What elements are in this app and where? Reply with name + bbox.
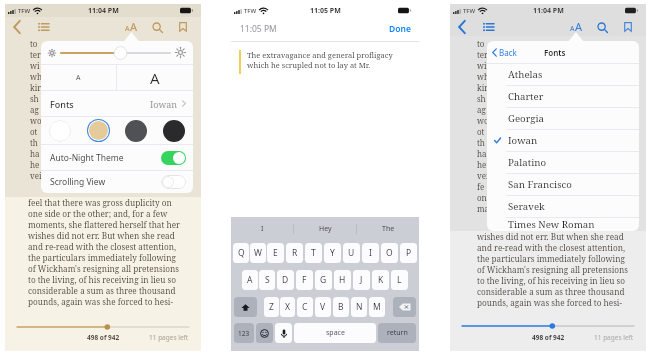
button[interactable]: R: [286, 243, 303, 263]
button[interactable]: L: [391, 270, 408, 290]
button[interactable]: Georgia: [487, 108, 639, 129]
staticText: Fonts: [50, 98, 74, 110]
button[interactable]: E: [267, 243, 284, 263]
button[interactable]: Palatino: [487, 152, 639, 173]
button[interactable]: Done: [387, 21, 413, 37]
button[interactable]: K: [372, 270, 389, 290]
button[interactable]: S: [259, 270, 275, 290]
staticText: U: [348, 247, 355, 259]
button[interactable]: N: [351, 297, 367, 317]
button[interactable]: [161, 175, 186, 189]
staticText: Times New Roman: [508, 218, 595, 231]
button[interactable]: X: [280, 297, 295, 317]
staticText: 11 pages left: [594, 333, 634, 342]
button[interactable]: Times New Roman: [487, 218, 639, 231]
button[interactable]: G: [315, 270, 332, 290]
button[interactable]: Seravek: [487, 196, 639, 217]
staticText: Y: [330, 247, 335, 259]
button[interactable]: Bookmark: [175, 19, 191, 35]
button[interactable]: space: [294, 323, 376, 343]
button[interactable]: Y: [324, 243, 341, 263]
button[interactable]: [155, 117, 193, 144]
staticText: he: [30, 159, 40, 170]
button[interactable]: I: [362, 243, 379, 263]
button[interactable]: Back: [487, 47, 522, 58]
button[interactable]: Athelas: [487, 64, 639, 85]
button[interactable]: Scrolling View: [41, 171, 193, 193]
button[interactable]: B: [333, 297, 349, 317]
button[interactable]: I: [231, 217, 293, 241]
staticText: sh: [477, 93, 486, 104]
button[interactable]: H: [334, 270, 351, 290]
staticText: ag: [477, 104, 486, 115]
button[interactable]: Text options: [122, 17, 141, 36]
button[interactable]: Fonts: [41, 91, 193, 116]
staticText: on: [477, 192, 487, 203]
button[interactable]: Hey: [294, 217, 356, 241]
button[interactable]: F: [296, 270, 313, 290]
button[interactable]: J: [353, 270, 370, 290]
button[interactable]: A: [242, 270, 258, 290]
staticText: A: [76, 73, 81, 83]
staticText: Done: [389, 23, 411, 35]
staticText: C: [302, 301, 308, 313]
staticText: of Wickham's resigning all pretensions: [28, 263, 180, 274]
button[interactable]: Back: [454, 19, 470, 35]
button[interactable]: San Francisco: [487, 174, 639, 195]
staticText: Q: [238, 247, 245, 259]
button[interactable]: Back: [9, 19, 25, 35]
button[interactable]: U: [343, 243, 360, 263]
button[interactable]: V: [315, 297, 331, 317]
staticText: TFW: [18, 7, 31, 15]
staticText: Fonts: [544, 47, 566, 58]
button[interactable]: return: [378, 323, 416, 343]
button[interactable]: O: [381, 243, 398, 263]
button[interactable]: Search: [594, 19, 610, 35]
button[interactable]: Charter: [487, 86, 639, 107]
button[interactable]: The: [357, 217, 419, 241]
staticText: 11:05 PM: [240, 23, 277, 35]
button[interactable]: Text options: [567, 17, 586, 36]
button[interactable]: M: [369, 297, 385, 317]
staticText: wh: [477, 71, 489, 82]
button[interactable]: W: [250, 243, 266, 263]
staticText: K: [378, 274, 384, 286]
button[interactable]: Search: [149, 19, 165, 35]
staticText: ha: [477, 148, 487, 159]
staticText: A: [130, 19, 138, 34]
staticText: The: [382, 224, 395, 234]
button[interactable]: Q: [233, 243, 249, 263]
button[interactable]: [79, 117, 117, 144]
button[interactable]: A: [117, 65, 193, 90]
staticText: ag: [30, 104, 39, 115]
staticText: fe: [477, 181, 485, 192]
staticText: considerable a sum as three thousand: [477, 286, 625, 297]
button[interactable]: C: [297, 297, 313, 317]
staticText: Iowan: [508, 134, 538, 147]
button[interactable]: P: [400, 243, 417, 263]
button[interactable]: Iowan: [487, 130, 639, 151]
button[interactable]: [117, 117, 155, 144]
button[interactable]: D: [277, 270, 294, 290]
button[interactable]: Shift: [234, 297, 257, 317]
button[interactable]: [161, 151, 186, 165]
button[interactable]: T: [305, 243, 322, 263]
staticText: B: [338, 301, 344, 313]
staticText: X: [285, 301, 290, 313]
button[interactable]: Contents: [480, 19, 496, 35]
staticText: wo: [477, 115, 489, 126]
staticText: pounds, again was she forced to hesi-: [28, 296, 174, 307]
button[interactable]: Dictate: [275, 323, 292, 343]
button[interactable]: Delete: [393, 297, 416, 317]
button[interactable]: Z: [264, 297, 279, 317]
button[interactable]: Emoji: [256, 323, 273, 343]
button[interactable]: A: [41, 65, 116, 90]
staticText: Scrolling View: [50, 176, 106, 188]
staticText: Z: [269, 301, 274, 313]
staticText: I: [261, 224, 264, 234]
button[interactable]: 123: [234, 323, 254, 343]
button[interactable]: Bookmark: [620, 19, 636, 35]
button[interactable]: Auto-Night Theme: [41, 145, 193, 170]
button[interactable]: Contents: [35, 19, 51, 35]
